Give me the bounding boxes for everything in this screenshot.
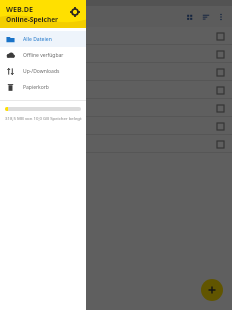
button[interactable]: Grid view (182, 9, 198, 25)
staticText: 318,5 MB von 10,0 GB Speicher belegt (5, 115, 82, 121)
staticText: Up-/Downloads (23, 68, 60, 75)
button[interactable] (0, 45, 232, 63)
button[interactable] (0, 81, 232, 99)
button[interactable]: Sort (198, 9, 214, 25)
staticText: Offline verfügbar (23, 52, 64, 59)
staticText: WEB.DE (6, 4, 33, 14)
button[interactable]: Offline verfügbar (0, 47, 86, 63)
button[interactable] (0, 99, 232, 117)
button[interactable] (0, 63, 232, 81)
button[interactable]: Add (201, 279, 223, 301)
button[interactable]: Alle Dateien (0, 31, 86, 47)
button[interactable]: Papierkorb (0, 79, 86, 95)
button[interactable]: More options (214, 10, 228, 24)
button[interactable] (0, 27, 232, 45)
button[interactable]: Settings (69, 6, 81, 18)
staticText: Alle Dateien (23, 36, 52, 43)
button[interactable]: Up-/Downloads (0, 63, 86, 79)
staticText: Papierkorb (23, 84, 49, 91)
button[interactable] (0, 117, 232, 135)
staticText: Online-Speicher (6, 15, 59, 24)
button[interactable] (0, 135, 232, 153)
